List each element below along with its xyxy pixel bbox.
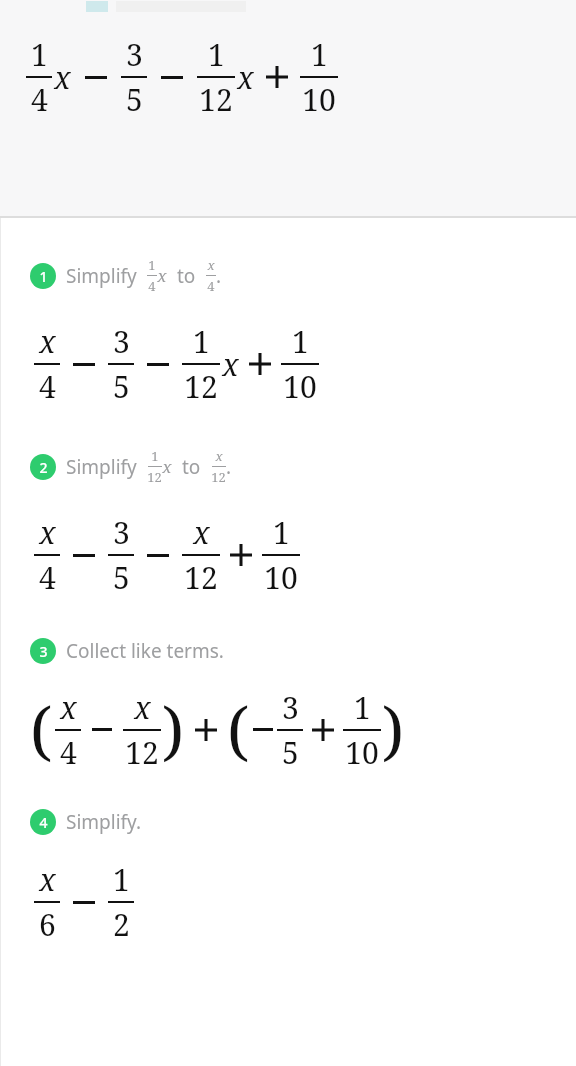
staticText: ( [30, 686, 53, 773]
staticText: 1 [311, 34, 328, 75]
staticText: x [237, 57, 254, 98]
staticText: 1 [31, 34, 48, 75]
staticText: 1 [273, 512, 290, 553]
staticText: 12 [184, 366, 218, 407]
staticText: 10 [302, 79, 336, 120]
staticText: x [222, 344, 239, 385]
staticText: 4 [148, 277, 156, 295]
staticText: x [157, 264, 167, 287]
button[interactable]: 1 [30, 256, 576, 295]
staticText: x [162, 455, 172, 478]
staticText: 12 [147, 468, 162, 486]
staticText: 2 [113, 904, 130, 945]
staticText: Simplify [66, 263, 137, 289]
button[interactable]: 3 [30, 638, 576, 664]
staticText: 3 [282, 687, 299, 728]
staticText: 1 [354, 687, 371, 728]
staticText: 4 [39, 813, 48, 832]
staticText: x [193, 512, 210, 553]
staticText: 4 [207, 277, 215, 295]
staticText: 12 [211, 468, 226, 486]
staticText: 10 [264, 557, 298, 598]
staticText: 4 [60, 732, 77, 773]
staticText: 3 [113, 321, 130, 362]
staticText: Simplify [66, 454, 137, 480]
staticText: x [54, 57, 71, 98]
staticText: 2 [39, 458, 48, 477]
staticText: 3 [39, 642, 48, 661]
staticText: 4 [39, 557, 56, 598]
staticText: ) [162, 686, 185, 773]
staticText: x [134, 687, 151, 728]
staticText: ) [382, 686, 405, 773]
staticText: x [60, 687, 77, 728]
staticText: . [216, 263, 222, 289]
staticText: x [207, 256, 215, 274]
staticText: 4 [39, 366, 56, 407]
staticText: 1 [151, 447, 159, 465]
staticText: 1 [208, 34, 225, 75]
button[interactable]: 4 [30, 809, 576, 835]
staticText: ( [227, 686, 250, 773]
staticText: 5 [113, 366, 130, 407]
staticText: 5 [126, 79, 143, 120]
staticText: 1 [39, 267, 48, 286]
button[interactable]: 2 [30, 447, 576, 486]
staticText: 1 [113, 859, 130, 900]
staticText: x [39, 859, 56, 900]
staticText: x [39, 512, 56, 553]
staticText: . [226, 454, 232, 480]
staticText: 3 [126, 34, 143, 75]
staticText: 3 [113, 512, 130, 553]
staticText: 10 [345, 732, 379, 773]
staticText: 1 [148, 256, 156, 274]
staticText: x [39, 321, 56, 362]
staticText: 12 [125, 732, 159, 773]
staticText: 4 [31, 79, 48, 120]
staticText: 6 [39, 904, 56, 945]
staticText: to [182, 454, 201, 480]
staticText: 10 [283, 366, 317, 407]
staticText: x [215, 447, 223, 465]
staticText: 1 [193, 321, 210, 362]
staticText: Simplify. [66, 809, 142, 835]
staticText: to [177, 263, 196, 289]
staticText: 12 [199, 79, 233, 120]
staticText: Collect like terms. [66, 638, 224, 664]
staticText: 1 [292, 321, 309, 362]
staticText: 5 [113, 557, 130, 598]
staticText: 12 [184, 557, 218, 598]
staticText: 5 [282, 732, 299, 773]
